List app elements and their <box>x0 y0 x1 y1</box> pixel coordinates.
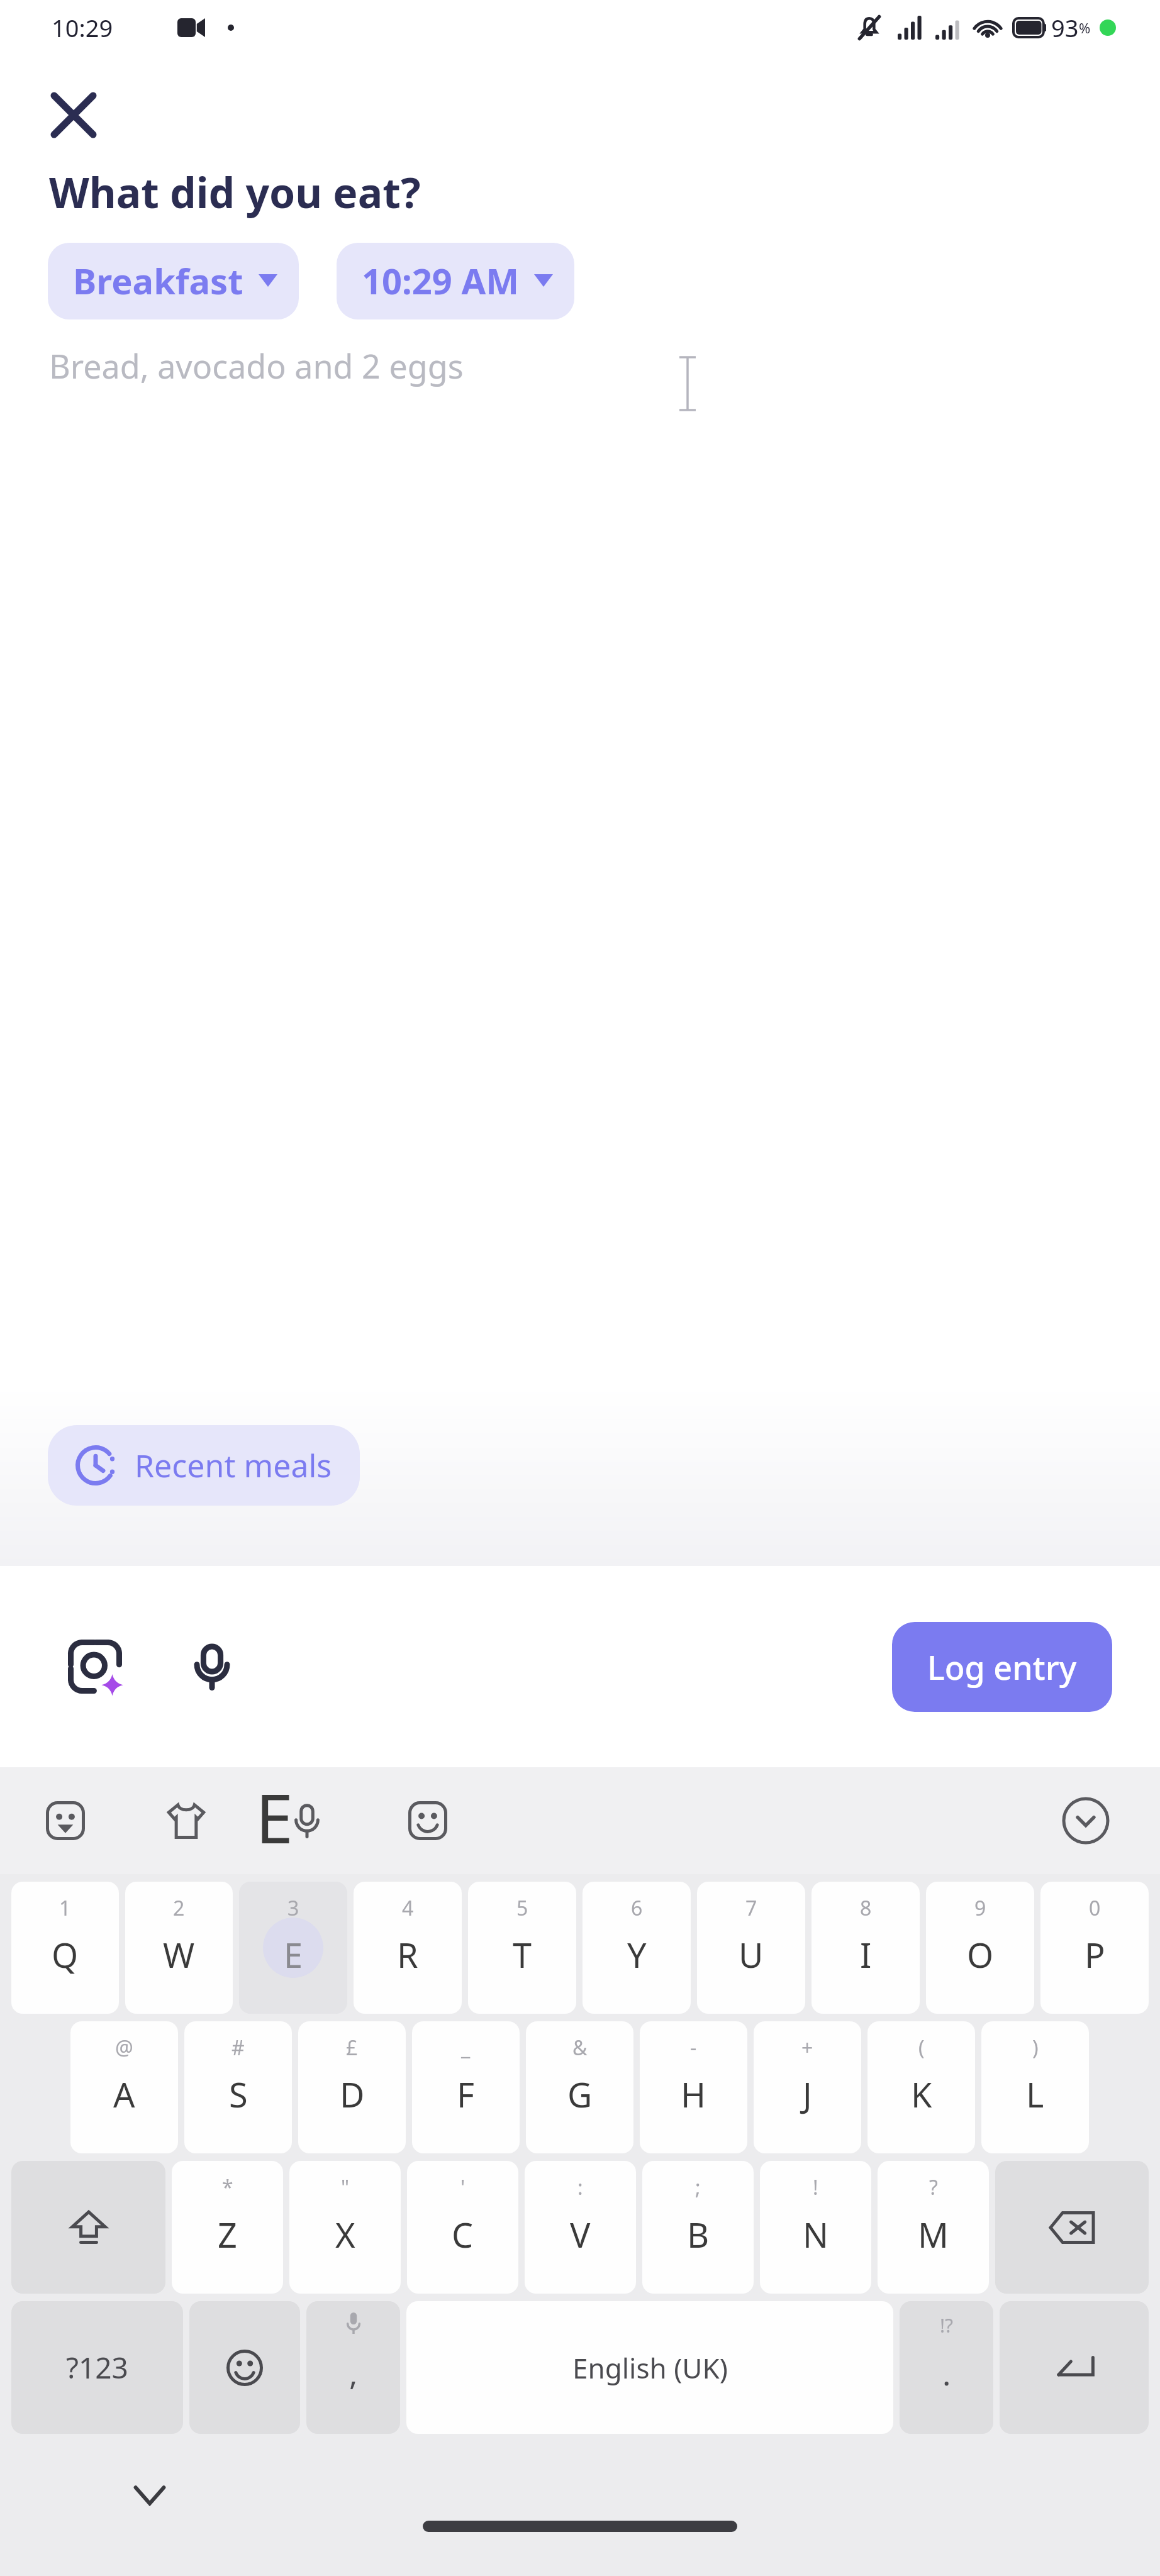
staticText: £ <box>346 2034 358 2062</box>
staticText: I <box>860 1931 872 1978</box>
staticText: 3 <box>287 1894 299 1922</box>
staticText: + <box>801 2034 813 2062</box>
button[interactable]: £ <box>298 2021 406 2153</box>
button[interactable]: 2 <box>125 1882 233 2014</box>
staticText: M <box>918 2211 949 2258</box>
button[interactable]: _ <box>412 2021 520 2153</box>
button[interactable]: , <box>306 2301 400 2434</box>
staticText: T <box>513 1931 532 1978</box>
staticText: N <box>803 2211 829 2258</box>
staticText: Y <box>627 1931 647 1978</box>
button[interactable]: ; <box>642 2161 754 2294</box>
staticText: " <box>341 2173 350 2201</box>
staticText: 9 <box>974 1894 986 1922</box>
staticText: 1 <box>59 1894 71 1922</box>
button[interactable]: * <box>172 2161 283 2294</box>
button[interactable]: 9 <box>926 1882 1034 2014</box>
staticText: 6 <box>631 1894 643 1922</box>
staticText: L <box>1026 2071 1044 2118</box>
button[interactable]: Voice input <box>177 1632 247 1701</box>
staticText: , <box>349 2352 358 2395</box>
staticText: Recent meals <box>135 1444 332 1487</box>
staticText: O <box>967 1931 994 1978</box>
staticText: D <box>340 2071 365 2118</box>
staticText: W <box>163 1931 195 1978</box>
staticText: What did you eat? <box>49 164 421 220</box>
button[interactable]: ' <box>407 2161 518 2294</box>
staticText: ?123 <box>66 2348 128 2387</box>
staticText: _ <box>461 2034 471 2062</box>
button[interactable]: Scan food with camera <box>60 1632 130 1701</box>
staticText: P <box>1085 1931 1105 1978</box>
button[interactable]: Breakfast <box>48 243 299 319</box>
staticText: E <box>284 1931 303 1978</box>
button[interactable]: 1 <box>11 1882 119 2014</box>
staticText: U <box>739 1931 764 1978</box>
staticText: . <box>942 2352 951 2395</box>
button[interactable]: Hide keyboard <box>120 2465 180 2526</box>
button[interactable]: ! <box>760 2161 871 2294</box>
staticText: ? <box>929 2173 938 2201</box>
staticText: 10:29 AM <box>362 257 519 304</box>
button[interactable]: Voice typing <box>274 1788 340 1853</box>
staticText: V <box>570 2211 591 2258</box>
button[interactable]: ?123 <box>11 2301 183 2434</box>
button[interactable]: Close <box>39 80 108 150</box>
button[interactable]: 3 <box>239 1882 347 2014</box>
button[interactable]: & <box>526 2021 633 2153</box>
button[interactable]: ) <box>981 2021 1089 2153</box>
staticText: E <box>255 1771 294 1863</box>
button[interactable]: 5 <box>468 1882 576 2014</box>
staticText: J <box>803 2071 812 2118</box>
button[interactable]: ( <box>867 2021 975 2153</box>
button[interactable]: 4 <box>354 1882 462 2014</box>
staticText: B <box>687 2211 710 2258</box>
staticText: ' <box>460 2173 466 2201</box>
staticText: Breakfast <box>73 257 243 304</box>
button[interactable]: 6 <box>583 1882 691 2014</box>
staticText: X <box>335 2211 355 2258</box>
button[interactable]: Emoji <box>189 2301 300 2434</box>
staticText: ; <box>695 2173 701 2201</box>
button[interactable]: Enter <box>1000 2301 1149 2434</box>
staticText: 2 <box>173 1894 185 1922</box>
button[interactable]: @ <box>70 2021 178 2153</box>
button[interactable]: Backspace <box>995 2161 1149 2294</box>
button[interactable]: 8 <box>811 1882 920 2014</box>
staticText: S <box>229 2071 248 2118</box>
staticText: 5 <box>516 1894 528 1922</box>
staticText: & <box>572 2034 588 2062</box>
staticText: % <box>1079 18 1091 37</box>
button[interactable]: !? <box>900 2301 993 2434</box>
button[interactable]: - <box>640 2021 747 2153</box>
button[interactable]: Shift <box>11 2161 165 2294</box>
button[interactable]: 7 <box>697 1882 805 2014</box>
button[interactable]: GIF clothing <box>153 1788 219 1853</box>
staticText: @ <box>115 2034 133 2062</box>
staticText: !? <box>940 2312 954 2338</box>
button[interactable]: Collapse toolbar <box>1054 1789 1117 1852</box>
staticText: C <box>452 2211 474 2258</box>
button[interactable]: " <box>289 2161 401 2294</box>
button[interactable]: : <box>525 2161 636 2294</box>
button[interactable]: Emoji <box>395 1788 460 1853</box>
button[interactable]: # <box>184 2021 292 2153</box>
staticText: R <box>397 1931 418 1978</box>
staticText: 93 <box>1051 11 1079 44</box>
button[interactable]: ? <box>878 2161 989 2294</box>
staticText: : <box>577 2173 583 2201</box>
button[interactable]: 0 <box>1040 1882 1149 2014</box>
staticText: A <box>113 2071 135 2118</box>
button[interactable]: Stickers <box>33 1788 98 1853</box>
button[interactable]: 10:29 AM <box>337 243 574 319</box>
staticText: F <box>457 2071 475 2118</box>
staticText: ! <box>813 2173 818 2201</box>
button[interactable]: + <box>754 2021 861 2153</box>
button[interactable]: Log entry <box>892 1622 1112 1712</box>
button[interactable]: English (UK) <box>406 2301 893 2434</box>
button[interactable]: Recent meals <box>48 1425 360 1506</box>
staticText: 4 <box>402 1894 414 1922</box>
staticText: * <box>222 2173 233 2201</box>
staticText: ) <box>1032 2034 1039 2062</box>
staticText: 0 <box>1089 1894 1101 1922</box>
